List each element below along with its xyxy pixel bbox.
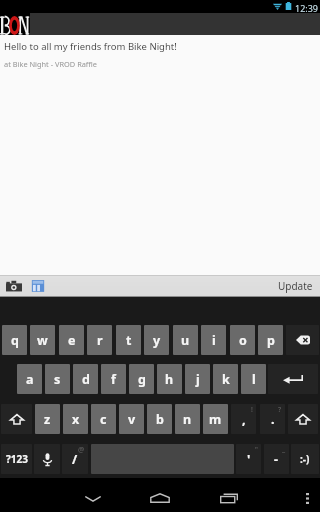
button[interactable]: q [2, 325, 27, 355]
staticText: d [82, 371, 90, 388]
button[interactable]: More options [292, 483, 320, 511]
staticText: g [138, 371, 146, 388]
staticText: :-) [300, 452, 310, 466]
button[interactable]: Take photo [2, 276, 26, 296]
button[interactable]: / [62, 444, 88, 474]
button[interactable]: . [260, 404, 285, 434]
button[interactable]: i [201, 325, 226, 355]
staticText: ' [247, 451, 251, 468]
staticText: p [267, 332, 275, 349]
button[interactable]: c [91, 404, 116, 434]
button[interactable]: e [59, 325, 84, 355]
button[interactable]: x [63, 404, 88, 434]
staticText: s [54, 371, 61, 388]
staticText: y [153, 332, 161, 349]
staticText: b [156, 411, 164, 428]
button[interactable]: r [87, 325, 112, 355]
staticText: w [37, 332, 48, 349]
staticText: k [222, 371, 230, 388]
staticText: z [44, 411, 51, 428]
button[interactable]: App logo [0, 13, 30, 35]
button[interactable]: b [147, 404, 172, 434]
button[interactable]: k [213, 364, 238, 394]
staticText: " [255, 445, 258, 455]
staticText: o [239, 332, 247, 349]
staticText: q [11, 332, 19, 349]
staticText: x [72, 411, 80, 428]
button[interactable]: o [230, 325, 255, 355]
button[interactable]: g [129, 364, 154, 394]
staticText: Hello to all my friends from Bike Night! [4, 40, 177, 53]
button[interactable]: a [17, 364, 42, 394]
button[interactable]: j [185, 364, 210, 394]
button[interactable]: l [241, 364, 266, 394]
button[interactable]: z [35, 404, 60, 434]
button[interactable]: backspace [286, 325, 319, 355]
button[interactable]: f [101, 364, 126, 394]
button[interactable]: , [231, 404, 256, 434]
staticText: at Bike Night - VROD Raffle [4, 59, 98, 69]
staticText: _ [282, 445, 286, 455]
button[interactable]: ' [236, 444, 261, 474]
button[interactable]: Update [271, 276, 320, 296]
staticText: 12:39 [295, 2, 319, 14]
button[interactable]: shift [288, 404, 318, 434]
staticText: a [26, 371, 34, 388]
button[interactable]: v [119, 404, 144, 434]
staticText: v [128, 411, 136, 428]
button[interactable]: t [116, 325, 141, 355]
button[interactable]: w [30, 325, 55, 355]
button[interactable]: p [258, 325, 283, 355]
staticText: r [97, 332, 103, 349]
button[interactable]: m [203, 404, 228, 434]
staticText: @ [78, 445, 85, 455]
button[interactable]: mic [34, 444, 60, 474]
button[interactable]: ?123 [1, 444, 32, 474]
staticText: m [209, 411, 222, 428]
button[interactable]: emoji [291, 444, 319, 474]
button[interactable]: y [144, 325, 169, 355]
staticText: n [183, 411, 192, 428]
button[interactable]: h [157, 364, 182, 394]
staticText: e [68, 332, 76, 349]
staticText: / [72, 451, 78, 468]
staticText: i [212, 332, 216, 349]
staticText: c [100, 411, 107, 428]
button[interactable]: Recents [206, 483, 252, 511]
button[interactable]: s [45, 364, 70, 394]
staticText: - [274, 451, 279, 468]
staticText: t [126, 332, 132, 349]
staticText: ! [251, 405, 253, 415]
staticText: u [181, 332, 190, 349]
staticText: j [196, 371, 200, 388]
button[interactable]: - [264, 444, 289, 474]
staticText: Update [278, 279, 313, 293]
staticText: . [271, 411, 275, 428]
staticText: ? [278, 405, 282, 415]
button[interactable]: Home [137, 483, 183, 511]
button[interactable]: u [173, 325, 198, 355]
staticText: h [165, 371, 174, 388]
staticText: ?123 [6, 452, 28, 466]
button[interactable]: n [175, 404, 200, 434]
staticText: f [111, 371, 116, 388]
staticText: , [242, 411, 246, 428]
button[interactable]: Hide keyboard [70, 483, 116, 511]
button[interactable]: enter [268, 364, 318, 394]
staticText: l [252, 371, 256, 388]
button[interactable]: d [73, 364, 98, 394]
button[interactable]: Choose picture [26, 276, 50, 296]
button[interactable]: shift [1, 404, 32, 434]
